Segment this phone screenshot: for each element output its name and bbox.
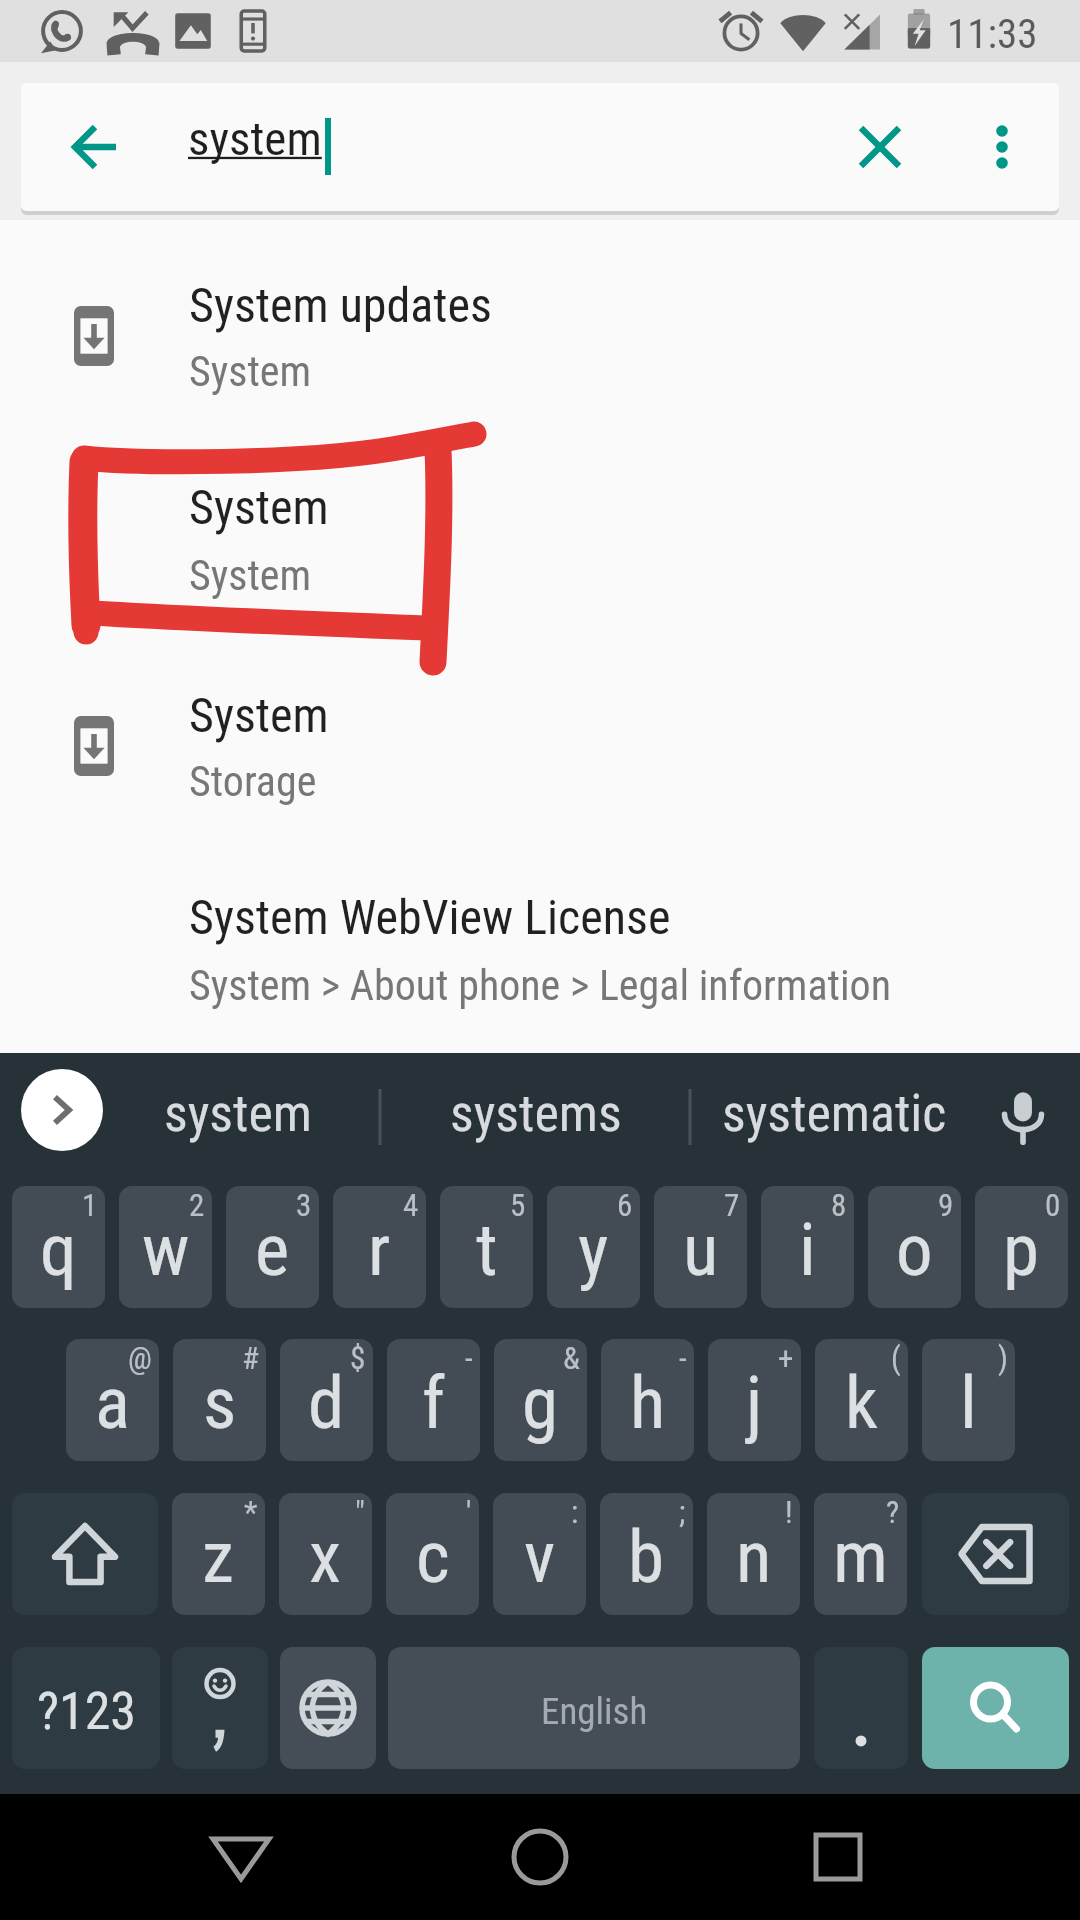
button[interactable] bbox=[0, 245, 1080, 445]
staticText: + bbox=[778, 1340, 794, 1376]
button[interactable]: w bbox=[119, 1186, 212, 1308]
staticText: r bbox=[368, 1207, 391, 1293]
staticText: Storage bbox=[189, 757, 317, 806]
button[interactable]: h bbox=[601, 1339, 694, 1461]
staticText: $ bbox=[350, 1340, 366, 1376]
staticText: ? bbox=[886, 1494, 900, 1530]
staticText: b bbox=[628, 1514, 665, 1600]
button[interactable]: ?123 bbox=[12, 1647, 160, 1769]
button[interactable]: u bbox=[654, 1186, 747, 1308]
button[interactable]: Clear search bbox=[820, 83, 940, 211]
button[interactable]: system bbox=[93, 1053, 383, 1183]
button[interactable]: p bbox=[975, 1186, 1068, 1308]
staticText: q bbox=[40, 1207, 77, 1293]
button[interactable]: Emoji bbox=[172, 1647, 268, 1769]
button[interactable] bbox=[0, 655, 1080, 855]
staticText: # bbox=[242, 1340, 259, 1376]
staticText: p bbox=[1003, 1207, 1040, 1293]
staticText: & bbox=[563, 1340, 580, 1376]
staticText: s bbox=[203, 1360, 237, 1446]
staticText: " bbox=[355, 1494, 365, 1530]
staticText: System bbox=[189, 551, 312, 600]
button[interactable]: f bbox=[387, 1339, 480, 1461]
staticText: o bbox=[896, 1207, 933, 1293]
staticText: 11:33 bbox=[947, 10, 1038, 58]
button[interactable]: o bbox=[868, 1186, 961, 1308]
staticText: 5 bbox=[510, 1187, 526, 1223]
staticText: 7 bbox=[724, 1187, 740, 1223]
staticText: system bbox=[188, 111, 322, 166]
button[interactable]: n bbox=[707, 1493, 800, 1615]
staticText: v bbox=[524, 1514, 556, 1600]
button[interactable]: English bbox=[388, 1647, 800, 1769]
button[interactable]: k bbox=[815, 1339, 908, 1461]
button[interactable]: systematic bbox=[689, 1053, 979, 1183]
button[interactable] bbox=[0, 860, 1080, 1050]
staticText: - bbox=[465, 1340, 473, 1376]
button[interactable]: m bbox=[814, 1493, 907, 1615]
button[interactable]: Expand suggestions bbox=[21, 1069, 103, 1151]
button[interactable]: Backspace bbox=[922, 1493, 1069, 1615]
staticText: d bbox=[308, 1360, 345, 1446]
staticText: k bbox=[845, 1360, 878, 1446]
button[interactable]: Back bbox=[180, 1794, 300, 1920]
button[interactable]: e bbox=[226, 1186, 319, 1308]
staticText: h bbox=[630, 1360, 666, 1446]
button[interactable]: r bbox=[333, 1186, 426, 1308]
button[interactable]: c bbox=[386, 1493, 479, 1615]
staticText: : bbox=[571, 1494, 579, 1530]
staticText: System > About phone > Legal information bbox=[189, 961, 892, 1010]
button[interactable]: z bbox=[172, 1493, 265, 1615]
button[interactable]: Recent apps bbox=[778, 1794, 898, 1920]
button[interactable]: v bbox=[493, 1493, 586, 1615]
button[interactable]: b bbox=[600, 1493, 693, 1615]
staticText: e bbox=[255, 1207, 290, 1293]
staticText: z bbox=[202, 1514, 235, 1600]
button[interactable]: d bbox=[280, 1339, 373, 1461]
button[interactable]: Search bbox=[922, 1647, 1069, 1769]
button[interactable] bbox=[814, 1647, 908, 1769]
staticText: English bbox=[541, 1690, 648, 1733]
button[interactable]: t bbox=[440, 1186, 533, 1308]
button[interactable]: y bbox=[547, 1186, 640, 1308]
button[interactable]: i bbox=[761, 1186, 854, 1308]
button[interactable]: a bbox=[66, 1339, 159, 1461]
button[interactable]: Shift bbox=[12, 1493, 158, 1615]
staticText: ( bbox=[891, 1340, 901, 1376]
staticText: System bbox=[189, 687, 329, 743]
button[interactable]: j bbox=[708, 1339, 801, 1461]
staticText: systematic bbox=[722, 1083, 947, 1144]
staticText: System bbox=[189, 347, 312, 396]
button[interactable]: Home bbox=[480, 1794, 600, 1920]
staticText: System bbox=[189, 479, 329, 535]
staticText: 1 bbox=[82, 1187, 98, 1223]
button[interactable]: x bbox=[279, 1493, 372, 1615]
button[interactable]: q bbox=[12, 1186, 105, 1308]
button[interactable]: s bbox=[173, 1339, 266, 1461]
button[interactable]: g bbox=[494, 1339, 587, 1461]
staticText: 4 bbox=[403, 1187, 419, 1223]
button[interactable]: Change keyboard bbox=[280, 1647, 376, 1769]
staticText: ; bbox=[679, 1494, 686, 1530]
button[interactable]: Voice input bbox=[995, 1089, 1051, 1145]
button[interactable]: More options bbox=[946, 83, 1056, 211]
staticText: x bbox=[309, 1514, 342, 1600]
button[interactable]: Back bbox=[32, 83, 160, 211]
staticText: 9 bbox=[938, 1187, 954, 1223]
staticText: m bbox=[833, 1514, 888, 1600]
staticText: 8 bbox=[831, 1187, 847, 1223]
staticText: f bbox=[422, 1360, 446, 1446]
staticText: g bbox=[522, 1360, 559, 1446]
button[interactable]: l bbox=[922, 1339, 1015, 1461]
staticText: a bbox=[95, 1360, 130, 1446]
staticText: u bbox=[683, 1207, 719, 1293]
staticText: w bbox=[142, 1207, 190, 1293]
button[interactable] bbox=[0, 450, 1080, 650]
staticText: systems bbox=[450, 1083, 622, 1144]
staticText: System WebView License bbox=[189, 889, 671, 945]
staticText: - bbox=[679, 1340, 687, 1376]
staticText: 0 bbox=[1045, 1187, 1061, 1223]
staticText: 2 bbox=[189, 1187, 205, 1223]
button[interactable]: systems bbox=[391, 1053, 681, 1183]
staticText: system bbox=[164, 1083, 313, 1144]
